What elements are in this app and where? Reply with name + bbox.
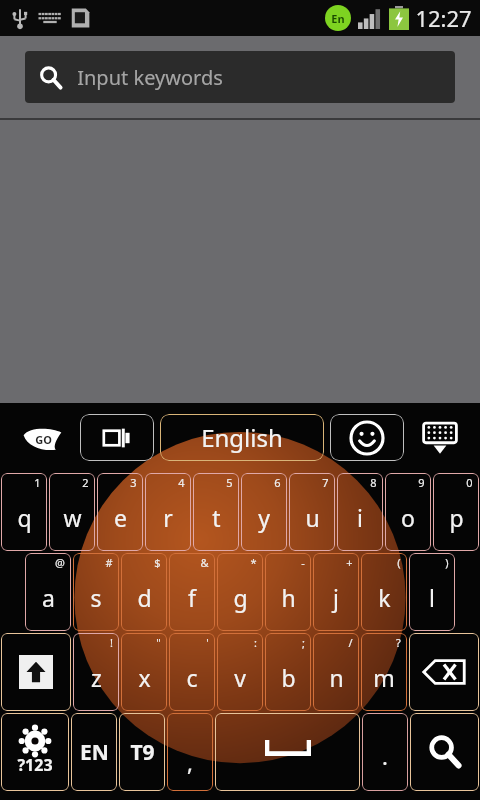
button[interactable]: 7 (289, 473, 335, 551)
staticText: 2 (82, 475, 89, 490)
staticText: u (305, 502, 320, 533)
staticText: English (201, 421, 283, 454)
button[interactable]: / (313, 633, 359, 711)
staticText: : (254, 635, 257, 650)
staticText: i (357, 502, 363, 533)
staticText: EN (80, 738, 109, 767)
button[interactable]: & (169, 553, 215, 631)
staticText: z (91, 662, 102, 693)
staticText: a (42, 582, 55, 613)
staticText: GO (35, 432, 52, 447)
staticText: v (234, 662, 246, 693)
staticText: & (200, 555, 209, 570)
staticText: c (186, 662, 198, 693)
button[interactable]: + (313, 553, 359, 631)
staticText: l (429, 582, 435, 613)
staticText: $ (154, 555, 161, 570)
button[interactable]: $ (121, 553, 167, 631)
staticText: r (163, 502, 173, 533)
button[interactable]: . (362, 713, 408, 791)
staticText: @ (55, 555, 65, 570)
staticText: # (105, 555, 113, 570)
staticText: - (301, 555, 305, 570)
staticText: 4 (178, 475, 185, 490)
button[interactable]: 6 (241, 473, 287, 551)
staticText: ?123 (17, 754, 53, 776)
staticText: t (212, 502, 221, 533)
staticText: j (333, 582, 339, 613)
button[interactable]: Switch layout (80, 414, 154, 461)
button[interactable]: GO Keyboard (4, 403, 80, 472)
staticText: ) (445, 555, 449, 570)
button[interactable]: 3 (97, 473, 143, 551)
staticText: 1 (34, 475, 41, 490)
staticText: b (281, 662, 296, 693)
button[interactable]: 0 (433, 473, 479, 551)
button[interactable]: 5 (193, 473, 239, 551)
staticText: , (187, 747, 193, 777)
staticText: " (156, 635, 161, 650)
staticText: 3 (130, 475, 137, 490)
button[interactable]: ( (361, 553, 407, 631)
staticText: 0 (466, 475, 473, 490)
button[interactable]: Input keywords (25, 51, 455, 103)
staticText: 12:27 (415, 3, 472, 33)
button[interactable]: Hide keyboard (404, 403, 476, 472)
button[interactable]: ; (265, 633, 311, 711)
button[interactable]: T9 (119, 713, 165, 791)
staticText: * (250, 555, 257, 570)
button[interactable]: ) (409, 553, 455, 631)
button[interactable]: 1 (1, 473, 47, 551)
button[interactable]: # (73, 553, 119, 631)
staticText: q (17, 502, 32, 533)
staticText: y (258, 502, 270, 533)
button[interactable]: ' (169, 633, 215, 711)
staticText: ? (396, 635, 401, 650)
staticText: 5 (226, 475, 233, 490)
button[interactable]: 9 (385, 473, 431, 551)
staticText: / (348, 635, 353, 650)
button[interactable]: Emoji (330, 414, 404, 461)
button[interactable]: @ (25, 553, 71, 631)
button[interactable]: * (217, 553, 263, 631)
button[interactable]: , (167, 713, 213, 791)
staticText: s (90, 582, 102, 613)
button[interactable]: EN (71, 713, 117, 791)
staticText: x (138, 662, 151, 693)
staticText: o (401, 502, 415, 533)
staticText: m (373, 662, 395, 693)
staticText: ( (397, 555, 401, 570)
staticText: e (114, 502, 127, 533)
button[interactable]: 8 (337, 473, 383, 551)
staticText: n (329, 662, 344, 693)
button[interactable]: : (217, 633, 263, 711)
button[interactable]: Backspace (409, 633, 479, 711)
button[interactable]: Search (410, 713, 479, 791)
staticText: 8 (370, 475, 377, 490)
button[interactable]: 2 (49, 473, 95, 551)
staticText: h (281, 582, 296, 613)
staticText: En (331, 11, 345, 26)
button[interactable]: " (121, 633, 167, 711)
staticText: T9 (130, 738, 155, 767)
staticText: + (346, 555, 353, 570)
button[interactable]: Space (215, 713, 360, 791)
staticText: ' (206, 635, 209, 650)
staticText: . (382, 741, 388, 771)
staticText: g (233, 582, 248, 613)
button[interactable]: Shift (1, 633, 71, 711)
button[interactable]: English (160, 414, 324, 461)
button[interactable]: ?123 (1, 713, 69, 791)
staticText: ! (110, 635, 113, 650)
button[interactable]: ? (361, 633, 407, 711)
button[interactable]: - (265, 553, 311, 631)
staticText: 9 (418, 475, 425, 490)
button[interactable]: ! (73, 633, 119, 711)
button[interactable]: 4 (145, 473, 191, 551)
staticText: f (188, 582, 196, 613)
staticText: p (449, 502, 464, 533)
staticText: 7 (322, 475, 329, 490)
staticText: k (378, 582, 391, 613)
staticText: ; (302, 635, 305, 650)
staticText: Input keywords (77, 64, 223, 91)
